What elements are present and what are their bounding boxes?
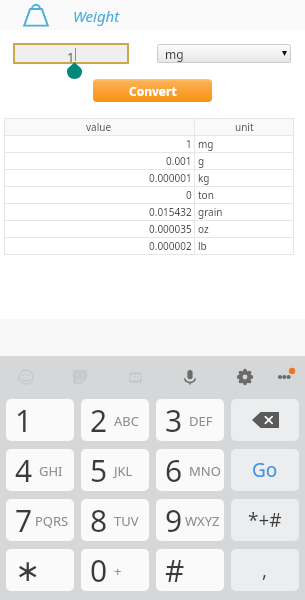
staticText: 0.000035 [149, 222, 192, 236]
staticText: 0.001 [166, 154, 192, 168]
staticText: mg [198, 137, 214, 151]
staticText: Convert [129, 83, 177, 99]
staticText: JKL [114, 462, 133, 480]
button[interactable]: 0 [81, 549, 149, 591]
staticText: GIF [130, 373, 142, 383]
button[interactable]: 6 [156, 449, 224, 491]
button[interactable]: 3 [156, 399, 224, 441]
button[interactable]: 1 [6, 399, 74, 441]
button[interactable]: Settings [232, 364, 258, 390]
staticText: + [114, 562, 122, 580]
button[interactable]: # [156, 549, 224, 591]
staticText: 5 [90, 450, 108, 491]
staticText: 1 [67, 48, 75, 65]
button[interactable]: 5 [81, 449, 149, 491]
staticText: 0.015432 [149, 205, 192, 219]
other: Backspace [252, 412, 279, 428]
staticText: *+# [248, 507, 282, 533]
button[interactable]: 7 [6, 499, 74, 541]
staticText: 0 [186, 188, 192, 202]
staticText: # [165, 550, 185, 591]
staticText: kg [198, 171, 210, 185]
button[interactable]: Stickers [67, 364, 93, 390]
button[interactable]: Go [231, 449, 299, 491]
staticText: TUV [114, 512, 139, 530]
button[interactable]: 8 [81, 499, 149, 541]
button[interactable]: ∗ [6, 549, 74, 591]
staticText: DEF [189, 412, 213, 430]
staticText: lb [198, 239, 207, 253]
button[interactable]: , [231, 549, 299, 591]
staticText: grain [198, 205, 223, 219]
staticText: Go [252, 457, 278, 483]
staticText: ∗ [15, 553, 41, 588]
staticText: WXYZ [185, 512, 220, 530]
staticText: mg [165, 46, 184, 62]
staticText: value [86, 120, 112, 134]
staticText: 0 [90, 550, 108, 591]
button[interactable]: Convert [93, 79, 212, 102]
staticText: g [198, 154, 205, 168]
staticText: GHI [39, 462, 63, 480]
staticText: , [262, 557, 268, 583]
staticText: 1 [186, 137, 192, 151]
staticText: 9 [165, 500, 183, 541]
staticText: PQRS [35, 512, 69, 530]
staticText: 4 [15, 450, 33, 491]
button[interactable]: mg [157, 44, 291, 63]
staticText: 2 [90, 400, 108, 441]
staticText: 8 [90, 500, 108, 541]
staticText: ton [198, 188, 214, 202]
staticText: 0.000002 [149, 239, 192, 253]
button[interactable]: 4 [6, 449, 74, 491]
button[interactable]: Voice input [177, 364, 203, 390]
staticText: oz [198, 222, 209, 236]
staticText: Weight [73, 6, 120, 26]
staticText: 0.000001 [149, 171, 192, 185]
button[interactable]: 1 [15, 45, 127, 62]
button[interactable]: Emoji [13, 364, 39, 390]
staticText: 6 [165, 450, 183, 491]
button[interactable]: 2 [81, 399, 149, 441]
staticText: 7 [15, 500, 33, 541]
staticText: 3 [165, 400, 183, 441]
staticText: 1 [15, 400, 33, 441]
staticText: MNO [189, 462, 221, 480]
button[interactable]: 9 [156, 499, 224, 541]
button[interactable]: GIF [122, 364, 148, 390]
button[interactable]: More options [271, 364, 297, 390]
button[interactable]: *+# [231, 499, 299, 541]
button[interactable]: Backspace [231, 399, 299, 441]
staticText: unit [235, 120, 254, 134]
staticText: ABC [114, 412, 139, 430]
